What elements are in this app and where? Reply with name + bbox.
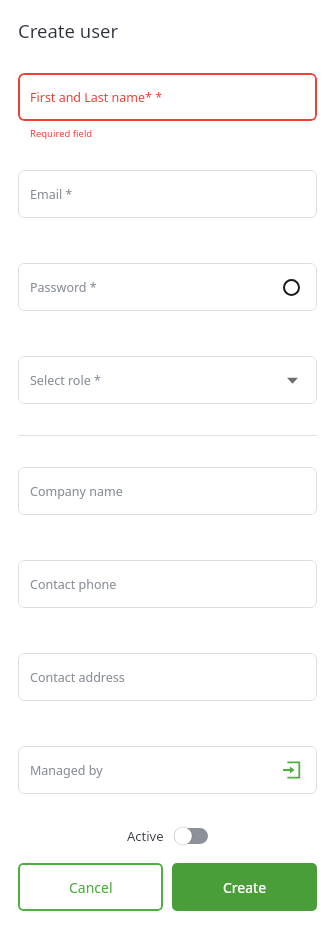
button[interactable]: Open role dropdown — [279, 367, 305, 393]
button[interactable]: Show password — [277, 273, 305, 301]
button[interactable]: Contact phone — [18, 560, 317, 608]
staticText: Password * — [30, 279, 97, 296]
button[interactable]: Email * — [18, 170, 317, 218]
staticText: Cancel — [69, 878, 113, 897]
button[interactable]: Select manager — [277, 756, 305, 784]
staticText: First and Last name* * — [30, 89, 163, 106]
button[interactable]: First and Last name* * — [18, 73, 317, 121]
button[interactable]: Cancel — [18, 863, 163, 911]
button[interactable]: Create — [172, 863, 317, 911]
staticText: Email * — [30, 186, 73, 203]
staticText: Active — [127, 827, 164, 845]
button[interactable]: Password * — [18, 263, 317, 311]
staticText: Contact address — [30, 669, 125, 686]
button[interactable]: Select role * — [18, 356, 317, 404]
staticText: Managed by — [30, 762, 103, 779]
staticText: Company name — [30, 483, 123, 500]
staticText: Create user — [18, 18, 119, 43]
button[interactable]: Active toggle — [174, 827, 208, 845]
button[interactable]: Managed by — [18, 746, 317, 794]
button[interactable]: Company name — [18, 467, 317, 515]
staticText: Contact phone — [30, 576, 117, 593]
staticText: Required field — [30, 127, 93, 140]
staticText: Select role * — [30, 372, 101, 389]
staticText: Create — [223, 878, 267, 897]
button[interactable]: Contact address — [18, 653, 317, 701]
